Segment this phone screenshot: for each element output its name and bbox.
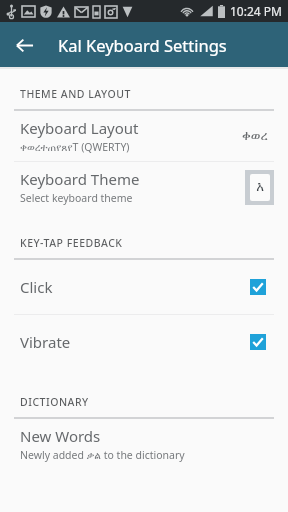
button[interactable]: Navigate up (7, 28, 41, 62)
staticText: New Words (20, 426, 101, 446)
staticText: Click (20, 277, 250, 297)
staticText: DICTIONARY (20, 395, 89, 409)
staticText: Keyboard Layout (20, 118, 139, 138)
button[interactable]: New Words (0, 419, 288, 469)
staticText: Newly added ቃል to the dictionary (20, 448, 185, 462)
button[interactable]: Keyboard Theme (0, 162, 288, 212)
staticText: Keyboard Theme (20, 169, 140, 189)
button[interactable]: Vibrate (0, 315, 288, 369)
staticText: THEME AND LAYOUT (20, 87, 131, 101)
staticText: እ (256, 181, 264, 194)
staticText: ቀወረ (242, 130, 268, 143)
staticText: Select keyboard theme (20, 191, 133, 205)
staticText: Kal Keyboard Settings (58, 34, 227, 56)
button[interactable]: Keyboard Layout (0, 111, 288, 161)
button[interactable]: Keyboard theme preview (245, 170, 274, 205)
staticText: ቀወረተጠየጸየT (QWERTY) (20, 140, 130, 154)
button[interactable]: Click (0, 260, 288, 314)
staticText: Vibrate (20, 332, 250, 352)
staticText: KEY-TAP FEEDBACK (20, 236, 123, 250)
staticText: 10:24 PM (230, 3, 282, 19)
